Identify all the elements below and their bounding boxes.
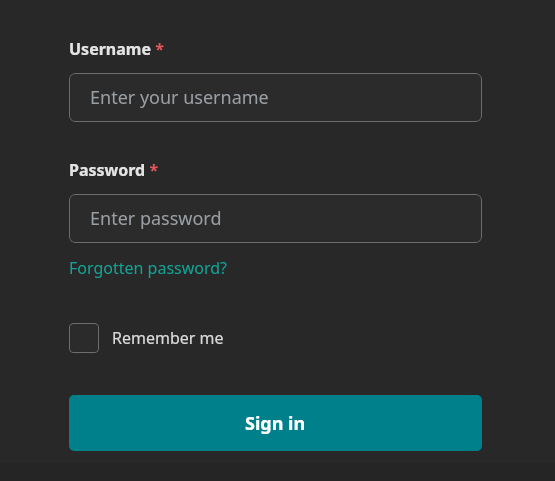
staticText: Forgotten password? [69, 257, 228, 279]
button[interactable]: Forgotten password? [69, 257, 228, 279]
staticText: Username * [69, 38, 164, 60]
staticText: Remember me [112, 327, 224, 349]
button[interactable]: Sign in [69, 395, 482, 451]
staticText: Sign in [245, 411, 306, 436]
button[interactable]: Remember me [69, 323, 224, 353]
button[interactable]: Enter password [69, 194, 482, 243]
button[interactable]: Enter your username [69, 73, 482, 122]
staticText: Enter your username [90, 85, 269, 110]
staticText: Enter password [90, 206, 222, 231]
staticText: Password * [69, 159, 159, 181]
